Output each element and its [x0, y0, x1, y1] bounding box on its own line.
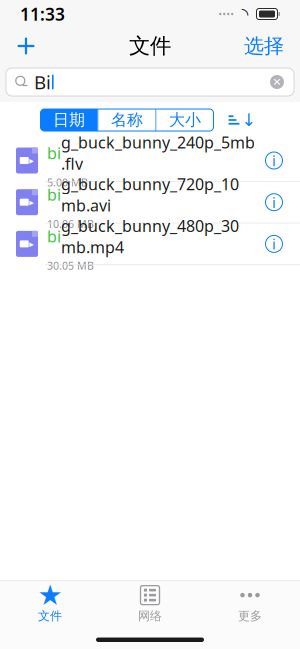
- staticText: ▸: [29, 155, 34, 166]
- staticText: ▸: [29, 239, 34, 249]
- button[interactable]: 更多: [200, 581, 300, 627]
- button[interactable]: 网络: [100, 581, 200, 627]
- button[interactable]: 排序: [225, 108, 259, 132]
- button[interactable]: ▸: [0, 223, 300, 265]
- staticText: Bi: [34, 70, 51, 94]
- button[interactable]: ▸: [0, 182, 300, 223]
- staticText: ★: [37, 579, 62, 611]
- staticText: i: [272, 151, 276, 170]
- staticText: ◝: [241, 4, 248, 24]
- staticText: 大小: [169, 110, 201, 130]
- button[interactable]: 添加: [6, 28, 46, 64]
- button[interactable]: 详细信息: [259, 226, 289, 262]
- button[interactable]: 日期: [40, 109, 97, 131]
- staticText: 5.00 MB: [47, 175, 88, 189]
- button[interactable]: Bi: [6, 68, 294, 96]
- button[interactable]: ★: [0, 581, 100, 627]
- staticText: g_buck_bunny_720p_10mb.avi: [61, 173, 239, 216]
- staticText: bi: [47, 226, 61, 247]
- staticText: 日期: [53, 110, 85, 130]
- staticText: 10.06 MB: [47, 217, 94, 231]
- staticText: ▸: [29, 197, 34, 207]
- staticText: ✕: [272, 76, 281, 88]
- staticText: ↓: [241, 110, 256, 130]
- staticText: bi: [47, 142, 61, 163]
- staticText: 选择: [244, 34, 284, 58]
- button[interactable]: 详细信息: [259, 184, 289, 220]
- staticText: g_buck_bunny_480p_30mb.mp4: [61, 215, 239, 258]
- staticText: 11:33: [20, 2, 65, 25]
- button[interactable]: ▸: [0, 140, 300, 182]
- staticText: i: [272, 234, 276, 254]
- staticText: i: [272, 192, 276, 212]
- staticText: 30.05 MB: [47, 259, 94, 273]
- staticText: g_buck_bunny_240p_5mb.flv: [61, 132, 255, 174]
- staticText: bi: [47, 184, 61, 205]
- staticText: 更多: [238, 609, 262, 623]
- staticText: 文件: [38, 609, 62, 623]
- button[interactable]: 选择: [234, 28, 294, 64]
- staticText: 文件: [129, 33, 171, 59]
- button[interactable]: 名称: [98, 109, 155, 131]
- button[interactable]: 大小: [156, 109, 213, 131]
- staticText: 名称: [111, 110, 143, 130]
- staticText: 网络: [138, 609, 162, 623]
- button[interactable]: 详细信息: [259, 142, 289, 178]
